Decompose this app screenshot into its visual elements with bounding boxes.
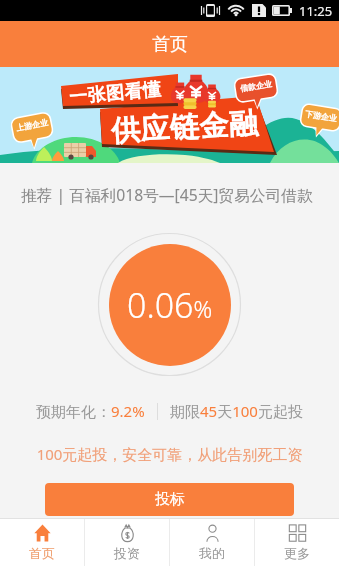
button[interactable]: 一张图看懂 [0,67,339,163]
staticText: 上游企业 [15,117,49,133]
staticText: 推荐 | 百福利018号—[45天]贸易公司借款 [21,184,339,205]
staticText: 一张图看懂 [68,78,163,109]
staticText: 投标 [155,490,185,509]
button[interactable]: 更多 [255,519,339,566]
staticText: 首页 [29,545,55,561]
staticText: 100元起投，安全可靠，从此告别死工资 [0,444,339,464]
staticText: 借款企业 [239,79,273,93]
button[interactable]: 我的 [170,519,254,566]
button[interactable]: 首页 [0,519,84,566]
staticText: 0.06% [127,282,213,328]
staticText: 下游企业 [304,109,338,123]
staticText: 首页 [152,33,188,56]
staticText: 投资 [114,545,140,561]
button[interactable]: 投资 [85,519,169,566]
staticText: 我的 [199,545,225,561]
button[interactable]: 投标 [45,483,294,516]
staticText: 期限45天100元起投 [170,401,303,421]
staticText: 更多 [284,545,310,561]
staticText: 11:25 [299,2,333,20]
staticText: 预期年化：9.2% [36,401,145,421]
staticText: 供应链金融 [110,105,260,150]
